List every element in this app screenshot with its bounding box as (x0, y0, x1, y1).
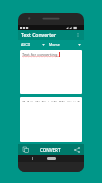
button[interactable]: ASCII (21, 41, 47, 49)
staticText: ASCII (21, 42, 30, 47)
button[interactable]: More options (74, 31, 82, 39)
staticText: Text for converting (22, 52, 58, 57)
button[interactable]: CONVERT (37, 146, 64, 154)
staticText: CONVERT (40, 147, 61, 153)
button[interactable]: Share (72, 145, 81, 154)
button[interactable]: Text for converting (20, 50, 82, 94)
staticText: Text Converter (21, 32, 57, 39)
button[interactable]: Copy (21, 145, 30, 154)
staticText: Morse Code (49, 42, 63, 47)
button[interactable] (20, 97, 82, 142)
button[interactable]: Morse Code (49, 41, 81, 49)
